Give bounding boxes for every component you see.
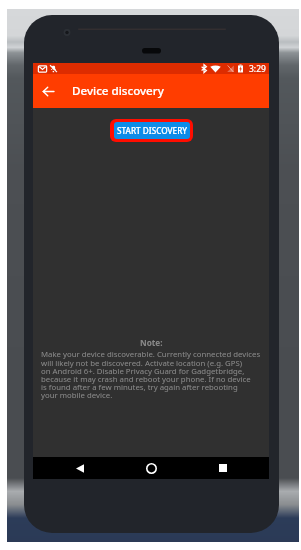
- button[interactable]: Navigate up: [33, 74, 63, 108]
- staticText: Note:: [140, 337, 163, 348]
- button[interactable]: Home: [126, 457, 176, 479]
- staticText: START DISCOVERY: [117, 125, 188, 136]
- staticText: Device discovery: [72, 83, 164, 99]
- staticText: 3:29: [249, 63, 266, 74]
- button[interactable]: Recent apps: [198, 457, 248, 479]
- button[interactable]: START DISCOVERY: [110, 119, 193, 142]
- button[interactable]: Back: [55, 457, 105, 479]
- staticText: Make your device discoverable. Currently…: [41, 349, 261, 400]
